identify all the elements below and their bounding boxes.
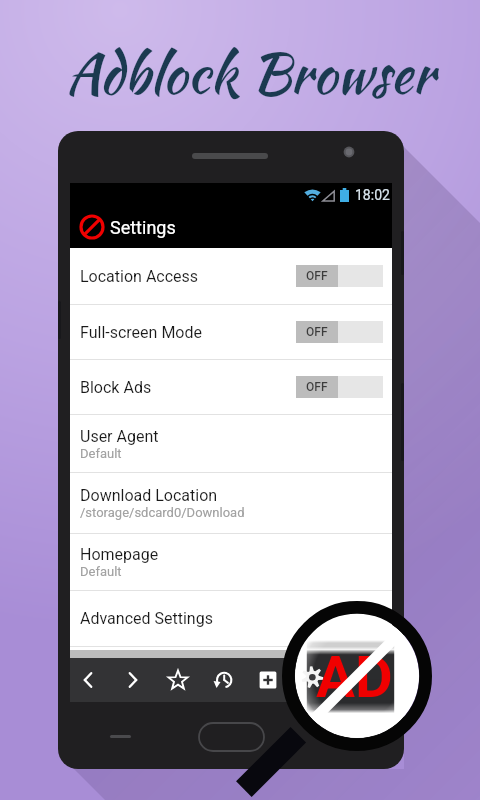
button[interactable]: Block Ads bbox=[70, 360, 392, 414]
staticText: Default bbox=[80, 564, 122, 579]
staticText: AD bbox=[316, 643, 393, 711]
staticText: 18:02 bbox=[355, 187, 390, 203]
staticText: Download Location bbox=[80, 486, 218, 505]
staticText: OFF bbox=[306, 325, 328, 339]
button[interactable]: History bbox=[200, 658, 245, 702]
staticText: Location Access bbox=[80, 267, 199, 286]
staticText: Full-screen Mode bbox=[80, 323, 202, 342]
button[interactable]: Settings bbox=[290, 658, 335, 702]
button[interactable]: OFF bbox=[296, 321, 383, 343]
button[interactable]: New tab bbox=[245, 658, 290, 702]
staticText: /storage/sdcard0/Download bbox=[80, 505, 245, 520]
button[interactable]: Back bbox=[65, 658, 110, 702]
button[interactable]: Advanced Settings bbox=[70, 591, 392, 646]
other: Adblock bbox=[79, 214, 105, 240]
button[interactable]: Homepage bbox=[70, 534, 392, 590]
button[interactable]: User Agent bbox=[70, 415, 392, 472]
button[interactable]: Location Access bbox=[70, 248, 392, 304]
button[interactable]: Adblock bbox=[70, 206, 392, 248]
staticText: User Agent bbox=[80, 427, 159, 446]
button[interactable]: Full-screen Mode bbox=[70, 305, 392, 359]
staticText: OFF bbox=[306, 269, 328, 283]
button[interactable]: OFF bbox=[296, 265, 383, 287]
staticText: Default bbox=[80, 446, 122, 461]
button[interactable]: Forward bbox=[110, 658, 155, 702]
button[interactable]: OFF bbox=[296, 376, 383, 398]
staticText: Adblock Browser bbox=[66, 33, 435, 113]
staticText: Block Ads bbox=[80, 378, 152, 397]
staticText: Advanced Settings bbox=[80, 609, 213, 628]
staticText: Settings bbox=[110, 217, 176, 238]
staticText: Homepage bbox=[80, 545, 159, 564]
staticText: OFF bbox=[306, 380, 328, 394]
button[interactable]: Bookmarks bbox=[155, 658, 200, 702]
button[interactable]: Download Location bbox=[70, 473, 392, 533]
